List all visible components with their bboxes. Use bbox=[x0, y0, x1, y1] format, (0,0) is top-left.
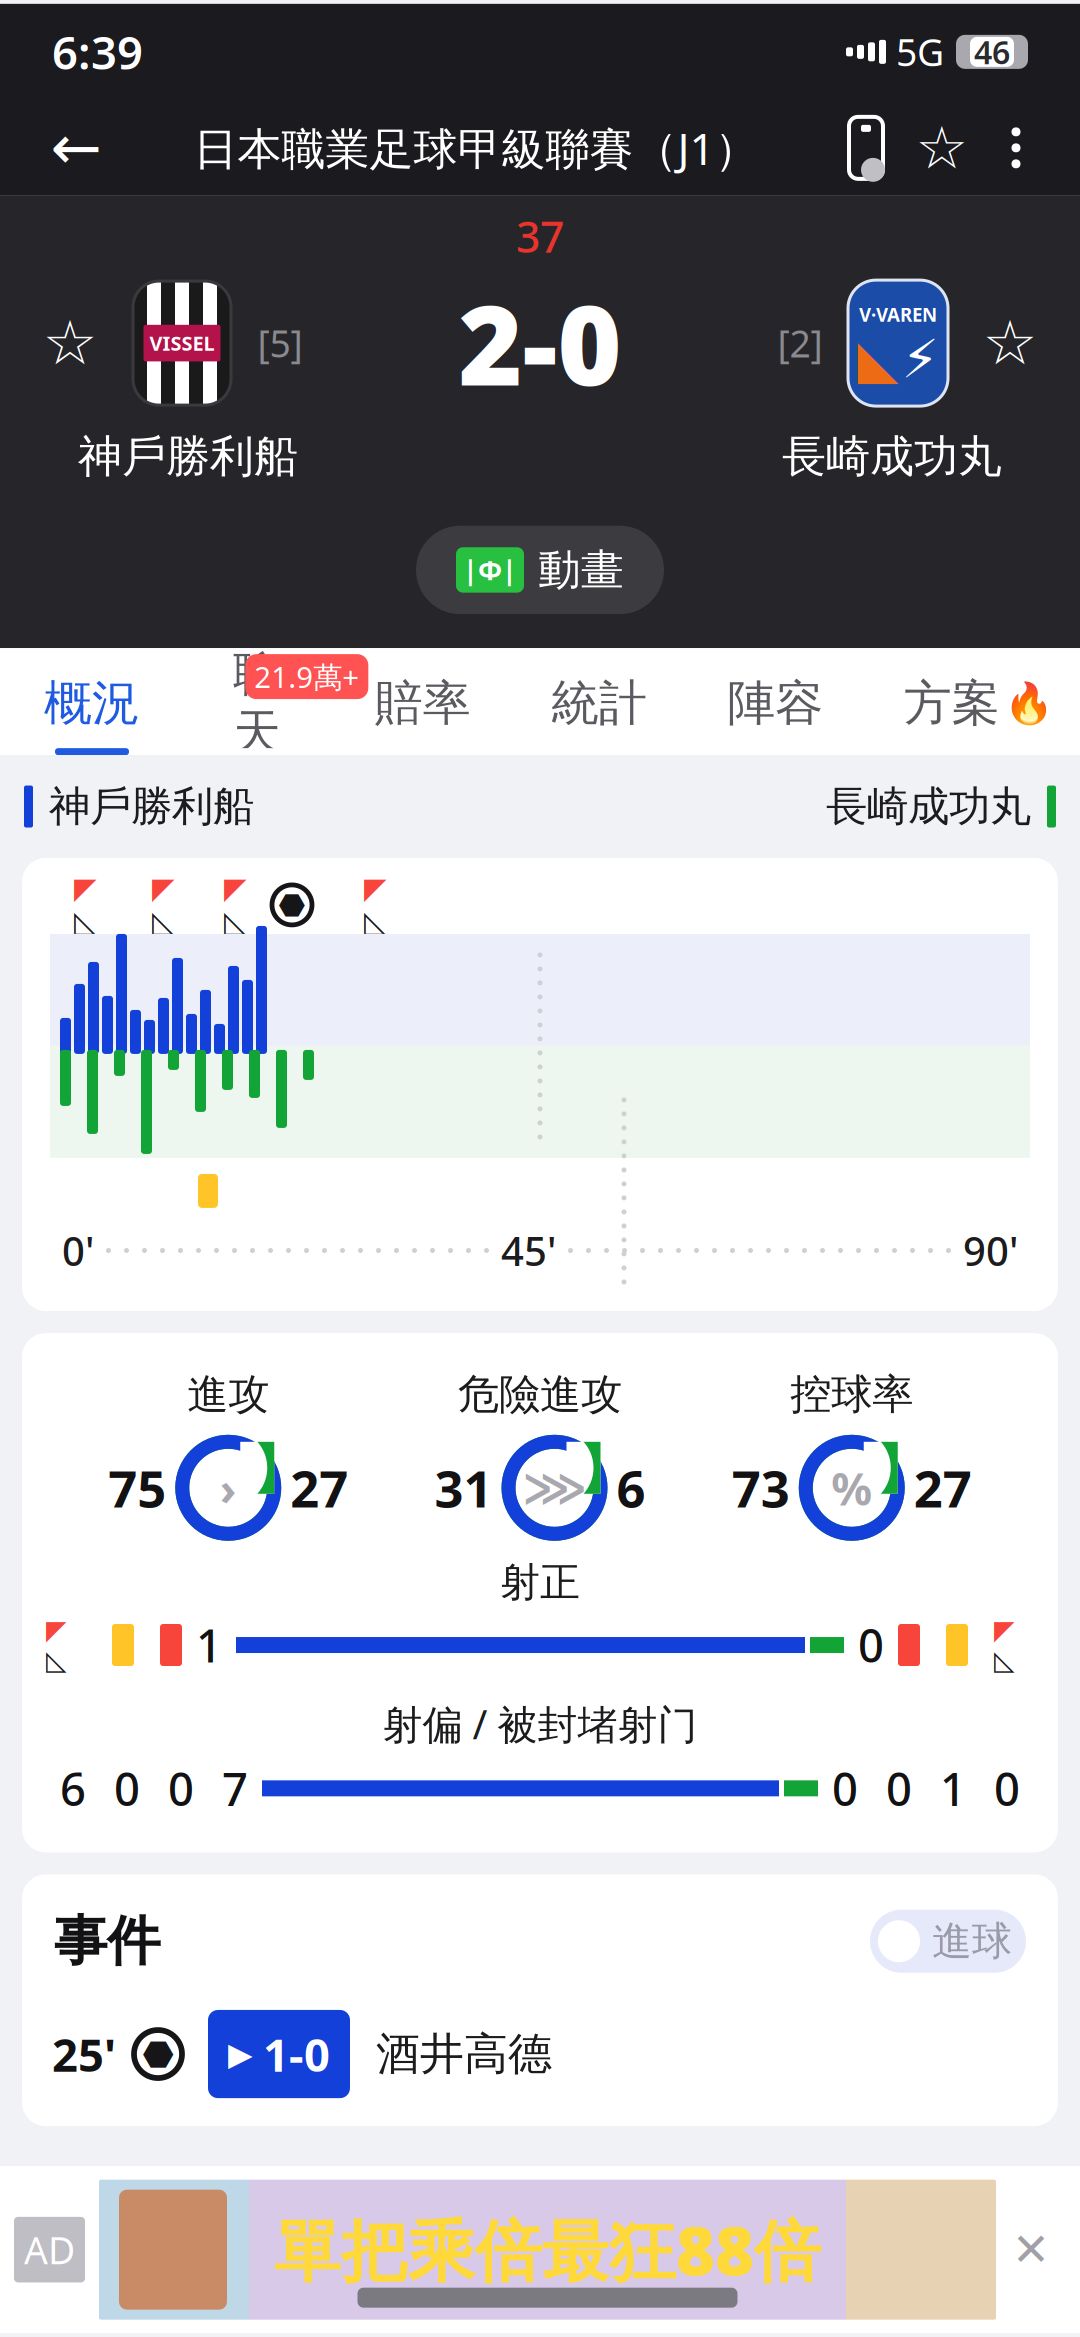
staticText: ◺ bbox=[994, 1645, 1015, 1675]
button[interactable]: 陣容 bbox=[721, 670, 829, 755]
staticText: 動畫 bbox=[538, 544, 624, 596]
staticText: 0 bbox=[832, 1758, 858, 1818]
button[interactable]: Alerts bbox=[828, 100, 904, 196]
staticText: [5] bbox=[257, 318, 302, 368]
staticText: ◺ bbox=[224, 905, 247, 938]
staticText: 1 bbox=[196, 1615, 222, 1675]
staticText: ◤ bbox=[152, 872, 175, 905]
button[interactable]: 方案 bbox=[898, 670, 1060, 755]
staticText: 射偏 / 被封堵射门 bbox=[382, 1697, 697, 1750]
staticText: 46 bbox=[974, 31, 1010, 73]
staticText: [2] bbox=[777, 318, 822, 368]
button[interactable]: 賠率 bbox=[369, 670, 477, 755]
staticText: 31 bbox=[434, 1454, 492, 1521]
staticText: ⋙ bbox=[522, 1462, 586, 1514]
button[interactable]: Favorite home team bbox=[24, 297, 116, 389]
staticText: ☆ bbox=[42, 308, 97, 378]
staticText: ← bbox=[50, 113, 101, 183]
staticText: 控球率 bbox=[790, 1369, 913, 1420]
button[interactable]: More options bbox=[980, 100, 1052, 196]
staticText: ⬣ bbox=[278, 887, 305, 922]
staticText: ✕ bbox=[1012, 2224, 1050, 2275]
staticText: 0 bbox=[886, 1758, 912, 1818]
button[interactable]: 聊天 bbox=[214, 670, 300, 755]
staticText: 神戶勝利船 bbox=[49, 781, 254, 832]
staticText: 長崎成功丸 bbox=[826, 781, 1031, 832]
staticText: 90' bbox=[963, 1224, 1018, 1277]
staticText: 進球 bbox=[932, 1917, 1012, 1966]
button[interactable]: 統計 bbox=[545, 670, 653, 755]
staticText: 7 bbox=[222, 1758, 248, 1818]
button[interactable]: Favorite away team bbox=[964, 297, 1056, 389]
staticText: 長崎成功丸 bbox=[782, 430, 1002, 484]
staticText: ◤ bbox=[364, 872, 387, 905]
staticText: 概況 bbox=[44, 674, 140, 733]
staticText: 27 bbox=[290, 1454, 348, 1521]
staticText: 陣容 bbox=[727, 674, 823, 733]
staticText: ☆ bbox=[982, 308, 1037, 378]
staticText: ◺ bbox=[74, 905, 97, 938]
staticText: ◺ bbox=[152, 905, 175, 938]
button[interactable]: Back bbox=[28, 100, 124, 196]
staticText: 方案 bbox=[904, 674, 1000, 733]
button[interactable]: 概況 bbox=[38, 670, 146, 755]
button[interactable]: 單把乘倍最狂88倍 bbox=[99, 2180, 996, 2320]
staticText: 日本職業足球甲級聯賽（J1） bbox=[193, 119, 758, 177]
staticText: % bbox=[831, 1458, 872, 1518]
staticText: 1 bbox=[940, 1758, 966, 1818]
staticText: 1-0 bbox=[263, 2024, 330, 2084]
staticText: ◺ bbox=[46, 1645, 67, 1675]
staticText: VISSEL bbox=[149, 330, 214, 356]
staticText: 0 bbox=[168, 1758, 194, 1818]
staticText: 0' bbox=[62, 1224, 94, 1277]
staticText: ◤ bbox=[74, 872, 97, 905]
button[interactable]: |Φ| bbox=[416, 526, 664, 614]
staticText: 45' bbox=[501, 1224, 556, 1277]
staticText: 聊天 bbox=[233, 644, 281, 762]
staticText: 賠率 bbox=[375, 674, 471, 733]
staticText: 事件 bbox=[54, 1908, 160, 1974]
button[interactable]: 25' bbox=[22, 1974, 1058, 2126]
staticText: 危險進攻 bbox=[458, 1369, 622, 1420]
staticText: AD bbox=[24, 2225, 75, 2274]
staticText: 神戶勝利船 bbox=[78, 430, 298, 484]
staticText: 0 bbox=[858, 1615, 884, 1675]
staticText: › bbox=[220, 1458, 237, 1518]
staticText: ⚡︎ bbox=[901, 329, 938, 389]
button[interactable]: Close ad bbox=[996, 2215, 1066, 2285]
button[interactable]: Favorite bbox=[904, 100, 980, 196]
staticText: ◤ bbox=[994, 1615, 1015, 1645]
staticText: 6 bbox=[616, 1454, 645, 1521]
staticText: 5G bbox=[896, 27, 944, 77]
staticText: 酒井高德 bbox=[376, 2027, 552, 2081]
staticText: ☆ bbox=[915, 115, 968, 181]
staticText: 射正 bbox=[500, 1558, 580, 1607]
staticText: 🔥 bbox=[1004, 680, 1054, 726]
staticText: ◤ bbox=[46, 1615, 67, 1645]
staticText: ◺ bbox=[364, 905, 387, 938]
staticText: 37 bbox=[516, 208, 564, 264]
staticText: 73 bbox=[732, 1454, 790, 1521]
staticText: 0 bbox=[114, 1758, 140, 1818]
staticText: V·VAREN bbox=[859, 302, 937, 327]
staticText: 6 bbox=[60, 1758, 86, 1818]
staticText: 6:39 bbox=[52, 22, 143, 82]
staticText: 進攻 bbox=[187, 1369, 269, 1420]
staticText: ▶ bbox=[228, 2036, 253, 2072]
staticText: 21.9萬+ bbox=[254, 657, 359, 696]
staticText: 單把乘倍最狂88倍 bbox=[274, 2205, 821, 2294]
staticText: ◣ bbox=[857, 329, 898, 389]
staticText: 27 bbox=[914, 1454, 972, 1521]
staticText: 0 bbox=[994, 1758, 1020, 1818]
staticText: 統計 bbox=[551, 674, 647, 733]
button[interactable]: Filter goals bbox=[870, 1910, 1026, 1973]
staticText: 25' bbox=[52, 2024, 116, 2084]
staticText: ◤ bbox=[224, 872, 247, 905]
staticText: 75 bbox=[108, 1454, 166, 1521]
staticText: ⬣ bbox=[142, 2034, 173, 2074]
staticText: 2-0 bbox=[458, 270, 621, 416]
staticText: |Φ| bbox=[463, 552, 517, 588]
